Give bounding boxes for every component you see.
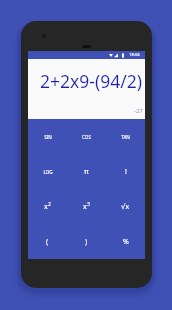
staticText: COS — [82, 134, 91, 140]
staticText: ) — [85, 237, 88, 247]
staticText: √x — [121, 202, 130, 212]
staticText: -27 — [134, 107, 143, 115]
button[interactable]: ( — [28, 224, 67, 259]
staticText: x — [44, 202, 48, 212]
button[interactable]: ) — [67, 224, 106, 259]
button[interactable]: TAN — [106, 119, 145, 154]
staticText: 18:04 — [129, 52, 140, 58]
staticText: SIN — [44, 134, 52, 140]
button[interactable]: SIN — [28, 119, 67, 154]
staticText: LOG — [43, 169, 53, 175]
staticText: % — [123, 237, 129, 247]
staticText: x — [83, 202, 87, 212]
button[interactable]: LOG — [28, 154, 67, 189]
button[interactable]: √x — [106, 189, 145, 224]
staticText: 2+2x9-(94/2) — [40, 69, 142, 93]
staticText: 2 — [48, 201, 51, 208]
staticText: ! — [125, 167, 127, 177]
staticText: π — [84, 167, 89, 177]
button[interactable]: % — [106, 224, 145, 259]
button[interactable]: x — [67, 189, 106, 224]
button[interactable]: x — [28, 189, 67, 224]
button[interactable]: π — [67, 154, 106, 189]
button[interactable]: ! — [106, 154, 145, 189]
button[interactable]: COS — [67, 119, 106, 154]
staticText: 3 — [87, 201, 90, 208]
staticText: TAN — [121, 134, 130, 140]
staticText: ( — [46, 237, 49, 247]
